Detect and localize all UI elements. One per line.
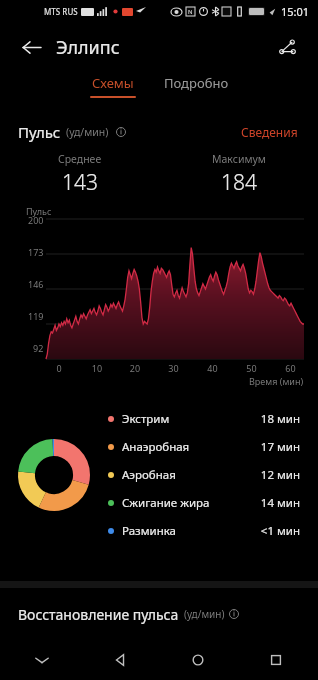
staticText: Эллипс (56, 35, 120, 60)
staticText: Максимум (212, 152, 266, 166)
staticText: Схемы (92, 74, 134, 92)
button[interactable]: Анаэробная (108, 433, 300, 461)
button[interactable]: Назад (100, 640, 140, 680)
staticText: Сведения (241, 124, 298, 140)
staticText: Время (мин) (249, 375, 304, 387)
staticText: <1 мин (248, 523, 300, 539)
staticText: MTS RUS (44, 6, 78, 17)
button[interactable]: Аэробная (108, 461, 300, 489)
staticText: 15:01 (281, 4, 310, 19)
button[interactable]: Информация (113, 124, 129, 140)
staticText: N (188, 8, 193, 16)
staticText: 143 (62, 168, 98, 197)
button[interactable]: Сжигание жира (108, 489, 300, 517)
button[interactable]: Разминка (108, 517, 300, 545)
staticText: Пульс (26, 205, 52, 217)
staticText: (уд/мин) (66, 125, 109, 139)
button[interactable]: Свернуть (22, 640, 62, 680)
button[interactable]: Сведения (239, 122, 300, 142)
staticText: 12 мин (248, 467, 300, 483)
button[interactable]: Поделиться (268, 28, 306, 66)
button[interactable]: Последние приложения (256, 640, 296, 680)
staticText: Аэробная (122, 467, 176, 483)
button[interactable]: Главный экран (178, 640, 218, 680)
staticText: Разминка (122, 523, 176, 539)
staticText: 146 (28, 278, 44, 290)
button[interactable]: Подробно (160, 72, 233, 98)
staticText: 92 (33, 342, 44, 354)
staticText: 17 мин (248, 439, 300, 455)
button[interactable]: Назад (12, 28, 50, 66)
staticText: 60 (271, 362, 310, 374)
staticText: Анаэробная (122, 439, 190, 455)
button[interactable]: Схемы (86, 72, 140, 100)
staticText: 50 (232, 362, 271, 374)
staticText: Восстановление пульса (18, 605, 179, 624)
staticText: 30 (154, 362, 193, 374)
staticText: 10 (78, 362, 116, 374)
staticText: 18 мин (248, 411, 300, 427)
button[interactable]: Экстрим (108, 405, 300, 433)
staticText: 0 (40, 362, 78, 374)
staticText: 119 (28, 310, 44, 322)
staticText: Среднее (58, 152, 102, 166)
staticText: Экстрим (122, 411, 170, 427)
staticText: 14 мин (248, 495, 300, 511)
staticText: Пульс (18, 122, 61, 142)
staticText: 20 (116, 362, 154, 374)
staticText: 173 (28, 246, 44, 258)
staticText: Сжигание жира (122, 495, 210, 511)
button[interactable]: Восстановление пульса (0, 588, 318, 640)
staticText: 200 (28, 214, 44, 226)
staticText: Подробно (164, 74, 229, 92)
staticText: 40 (193, 362, 232, 374)
staticText: (уд/мин) (184, 607, 225, 621)
staticText: 184 (221, 168, 257, 197)
